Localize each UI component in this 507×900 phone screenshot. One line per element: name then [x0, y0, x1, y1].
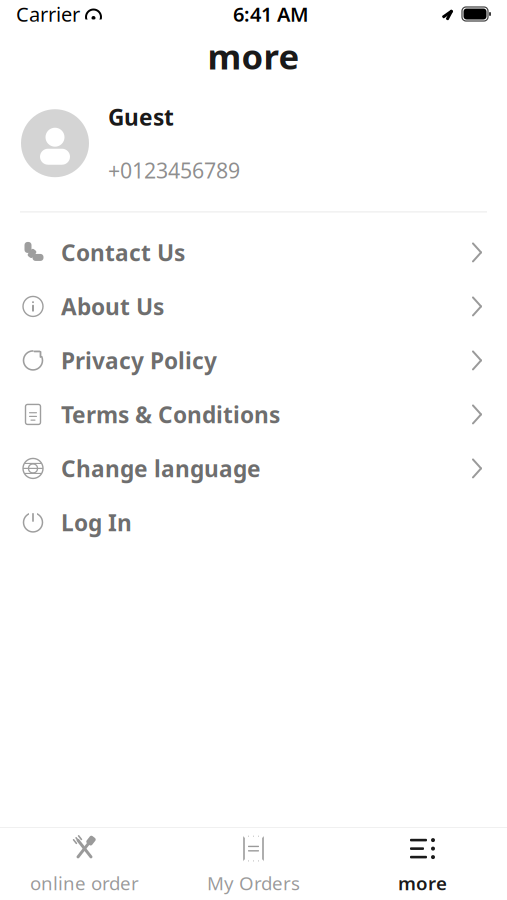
button[interactable]: Contact Us — [0, 225, 507, 279]
staticText: Terms & Conditions — [61, 399, 280, 429]
button[interactable]: Privacy Policy — [0, 333, 507, 387]
button[interactable]: About Us — [0, 279, 507, 333]
button[interactable]: Log In — [0, 495, 507, 549]
staticText: +0123456789 — [108, 156, 240, 184]
staticText: Privacy Policy — [61, 345, 217, 375]
button[interactable]: online order — [0, 825, 169, 900]
button[interactable]: My Orders — [169, 825, 338, 900]
button[interactable]: Change language — [0, 441, 507, 495]
staticText: more — [398, 871, 447, 895]
staticText: 6:41 AM — [233, 1, 309, 27]
button[interactable]: Terms & Conditions — [0, 387, 507, 441]
staticText: Carrier — [16, 1, 80, 27]
staticText: Log In — [61, 507, 132, 537]
staticText: Contact Us — [61, 237, 185, 267]
staticText: About Us — [61, 291, 164, 321]
staticText: more — [207, 33, 299, 79]
staticText: Guest — [108, 102, 174, 132]
staticText: Change language — [61, 453, 261, 483]
button[interactable]: more — [338, 825, 507, 900]
staticText: online order — [30, 871, 139, 895]
staticText: My Orders — [207, 871, 300, 895]
